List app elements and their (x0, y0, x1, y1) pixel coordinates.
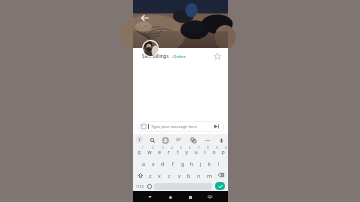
staticText: h (190, 160, 194, 167)
staticText: j (200, 160, 202, 167)
staticText: ?123 (136, 184, 144, 189)
staticText: Type your message here (151, 124, 197, 129)
button[interactable]: More options (203, 136, 211, 144)
staticText: n (197, 172, 201, 179)
staticText: Sam Billings (142, 53, 169, 59)
button[interactable]: l (214, 157, 223, 169)
staticText: t (177, 148, 179, 155)
staticText: 8 (207, 146, 209, 150)
button[interactable]: Hide keyboard (205, 192, 215, 202)
staticText: 4 (171, 146, 173, 150)
button[interactable]: m (204, 169, 214, 181)
button[interactable]: x (155, 169, 164, 181)
button[interactable]: s (148, 157, 158, 169)
button[interactable]: p (218, 145, 227, 157)
staticText: 5 (180, 146, 182, 150)
button[interactable]: Shift (134, 169, 146, 181)
button[interactable]: n (194, 169, 204, 181)
staticText: l (218, 160, 220, 167)
button[interactable]: Back (138, 11, 151, 24)
button[interactable]: w (144, 145, 154, 157)
button[interactable]: Recent apps (185, 192, 195, 202)
staticText: k (208, 160, 211, 167)
staticText: i (204, 148, 206, 155)
staticText: b (187, 172, 191, 179)
button[interactable]: q (134, 145, 144, 157)
button[interactable]: z (146, 169, 155, 181)
button[interactable]: v (174, 169, 184, 181)
button[interactable]: b (184, 169, 194, 181)
button[interactable]: r (164, 145, 173, 157)
button[interactable]: t (173, 145, 182, 157)
staticText: c (168, 172, 171, 179)
button[interactable]: Voice input (217, 136, 225, 144)
button[interactable]: k (205, 157, 214, 169)
staticText: - Online (171, 54, 186, 59)
staticText: 1 (142, 146, 144, 150)
staticText: q (137, 148, 141, 155)
button[interactable]: Translate (189, 136, 197, 144)
button[interactable]: Backspace (214, 169, 227, 181)
staticText: w (147, 148, 152, 155)
button[interactable]: e (154, 145, 164, 157)
staticText: 6 (189, 146, 191, 150)
button[interactable]: f (168, 157, 178, 169)
staticText: v (178, 172, 181, 179)
staticText: x (158, 172, 161, 179)
button[interactable]: Home (165, 192, 175, 202)
button[interactable]: Favorite (211, 50, 223, 62)
staticText: s (152, 160, 155, 167)
button[interactable]: Sam Billings (142, 48, 223, 64)
button[interactable]: Back (145, 192, 155, 202)
staticText: y (185, 148, 188, 155)
button[interactable]: Search (148, 136, 156, 144)
staticText: r (167, 148, 170, 155)
button[interactable]: Send message (215, 182, 225, 190)
staticText: 3 (162, 146, 164, 150)
button[interactable]: Send (213, 123, 220, 130)
staticText: a (142, 160, 145, 167)
button[interactable]: Expand toolbar (136, 136, 143, 143)
staticText: 0 (225, 146, 227, 150)
button[interactable]: ?123 (135, 182, 145, 190)
staticText: d (161, 160, 165, 167)
button[interactable]: GIF (174, 135, 183, 144)
button[interactable]: Type your message here (137, 121, 224, 132)
staticText: 7 (198, 146, 200, 150)
staticText: m (207, 172, 212, 179)
button[interactable]: j (196, 157, 205, 169)
button[interactable]: c (164, 169, 174, 181)
staticText: 2 (152, 146, 154, 150)
button[interactable]: u (191, 145, 200, 157)
staticText: g (181, 160, 185, 167)
staticText: f (172, 160, 174, 167)
staticText: GIF (176, 138, 181, 142)
staticText: z (149, 172, 152, 179)
staticText: o (212, 148, 216, 155)
button[interactable]: i (200, 145, 209, 157)
staticText: e (158, 148, 161, 155)
button[interactable]: g (178, 157, 187, 169)
staticText: 9 (216, 146, 218, 150)
button[interactable]: d (158, 157, 168, 169)
staticText: u (194, 148, 198, 155)
button[interactable]: h (187, 157, 196, 169)
button[interactable]: Profile photo (143, 41, 158, 56)
button[interactable]: Stickers (161, 136, 169, 144)
button[interactable]: y (182, 145, 191, 157)
staticText: p (221, 148, 225, 155)
button[interactable]: o (209, 145, 218, 157)
button[interactable]: a (138, 157, 148, 169)
button[interactable]: Emoji (145, 182, 154, 190)
